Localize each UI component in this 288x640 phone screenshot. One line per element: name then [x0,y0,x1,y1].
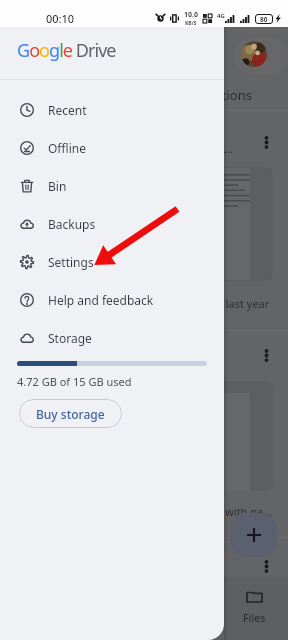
staticText: Backups [48,216,96,232]
button[interactable]: Bin [0,167,224,205]
button[interactable]: More options [264,349,269,362]
staticText: Settings [48,254,94,270]
staticText: Modified last year [177,296,270,311]
staticText: Buy storage [36,406,105,422]
staticText: Suggestions [177,86,252,104]
staticText: 80 [260,15,268,24]
staticText: Bin [48,178,67,194]
button[interactable]: More options [264,136,269,149]
button[interactable]: Offline [0,129,224,167]
staticText: 4.72 GB of 15 GB used [17,374,132,389]
staticText: Recent [48,102,87,118]
button[interactable]: Files [226,590,282,625]
button[interactable]: Buy storage [19,399,122,428]
button[interactable]: Storage [0,319,224,357]
staticText: 4G [217,12,225,20]
staticText: Google Drive [17,38,116,63]
button[interactable]: Backups [0,205,224,243]
button[interactable]: More options [264,560,269,573]
staticText: Offline [48,140,87,156]
staticText: Help and feedback [48,292,154,308]
staticText: KB/S [185,20,197,27]
staticText: Files [243,611,266,625]
staticText: Tentative schedule... [128,141,233,156]
staticText: Shared with pa... [186,504,273,519]
button[interactable]: New [230,513,277,557]
button[interactable]: Recent [0,91,224,129]
button[interactable]: Account [241,41,267,67]
staticText: Storage [48,330,92,346]
button[interactable]: Settings [0,243,224,281]
staticText: 00:10 [46,11,75,26]
button[interactable]: Help and feedback [0,281,224,319]
staticText: 10.0 [184,10,198,20]
